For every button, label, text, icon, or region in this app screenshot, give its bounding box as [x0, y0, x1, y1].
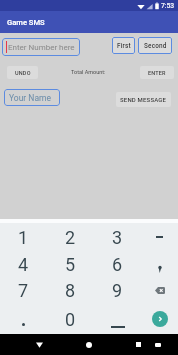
button[interactable]: Space — [94, 305, 141, 333]
button[interactable]: Back — [23, 334, 55, 355]
button[interactable]: 6 — [94, 250, 141, 278]
staticText: First — [117, 42, 131, 50]
button[interactable]: 5 — [47, 250, 94, 278]
staticText: 7:53 — [161, 2, 175, 10]
button[interactable]: UNDO — [7, 66, 38, 79]
button[interactable]: Second — [138, 37, 172, 54]
button[interactable]: 4 — [0, 250, 47, 278]
button[interactable]: 7 — [0, 276, 47, 304]
staticText: ENTER — [148, 70, 166, 76]
staticText: Second — [144, 42, 167, 50]
button[interactable]: 2 — [47, 223, 94, 251]
button[interactable]: 3 — [94, 223, 141, 251]
button[interactable]: Your Name — [4, 89, 60, 106]
staticText: 6 — [112, 254, 123, 275]
staticText: Your Name — [9, 93, 52, 103]
button[interactable]: Backspace — [141, 276, 178, 304]
staticText: 8 — [65, 280, 76, 301]
staticText: Enter Number here — [8, 43, 75, 52]
staticText: 3 — [112, 227, 123, 248]
button[interactable]: 1 — [0, 223, 47, 251]
button[interactable]: ENTER — [140, 66, 174, 79]
button[interactable]: 9 — [94, 276, 141, 304]
staticText: UNDO — [15, 70, 31, 76]
button[interactable]: Home — [73, 334, 105, 355]
button[interactable]: Hide keyboard — [147, 334, 169, 355]
staticText: 4 — [18, 254, 29, 275]
button[interactable]: Recent apps — [122, 334, 154, 355]
staticText: Game SMS — [7, 18, 45, 27]
button[interactable]: First — [112, 37, 135, 54]
button[interactable]: Enter — [141, 305, 178, 333]
button[interactable]: Comma — [141, 250, 178, 278]
staticText: 0 — [65, 309, 76, 330]
staticText: 2 — [65, 227, 76, 248]
staticText: 5 — [65, 254, 76, 275]
button[interactable]: Enter Number here — [2, 38, 80, 56]
staticText: 9 — [112, 280, 123, 301]
staticText: SEND MESSAGE — [120, 96, 167, 103]
staticText: 1 — [18, 227, 29, 248]
button[interactable]: SEND MESSAGE — [116, 92, 171, 107]
staticText: 7 — [18, 280, 29, 301]
button[interactable]: Dash — [141, 223, 178, 251]
staticText: Total Amount: — [71, 69, 106, 75]
button[interactable]: Period — [0, 305, 47, 333]
button[interactable]: 8 — [47, 276, 94, 304]
button[interactable]: 0 — [47, 305, 94, 333]
button[interactable]: Game SMS — [0, 11, 178, 33]
